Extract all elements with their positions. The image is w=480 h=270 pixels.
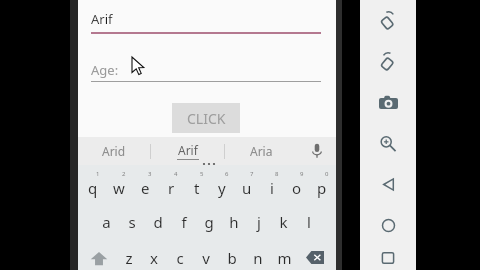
staticText: g — [204, 212, 214, 232]
staticText: 3 — [148, 170, 152, 178]
button[interactable]: CLICK — [172, 103, 240, 133]
staticText: CLICK — [187, 109, 226, 128]
button[interactable]: Shift — [81, 245, 116, 270]
staticText: 0 — [325, 170, 329, 178]
button[interactable]: 4 — [158, 170, 184, 200]
button[interactable]: h — [221, 208, 246, 236]
button[interactable]: 7 — [234, 170, 259, 200]
staticText: h — [229, 212, 239, 232]
staticText: o — [292, 178, 302, 198]
button[interactable]: j — [246, 208, 271, 236]
button[interactable]: 3 — [132, 170, 158, 200]
staticText: 8 — [275, 170, 279, 178]
staticText: i — [270, 178, 274, 198]
button[interactable]: 0 — [309, 170, 334, 200]
staticText: 9 — [300, 170, 304, 178]
staticText: Aria — [250, 143, 273, 159]
staticText: 1 — [96, 170, 100, 178]
staticText: t — [194, 178, 200, 198]
button[interactable]: g — [196, 208, 221, 236]
button[interactable]: 8 — [259, 170, 284, 200]
button[interactable]: Recents — [360, 246, 416, 270]
button[interactable]: s — [119, 208, 145, 236]
button[interactable]: n — [245, 245, 271, 270]
staticText: Age: — [91, 61, 119, 79]
staticText: s — [128, 212, 136, 232]
staticText: 2 — [122, 170, 126, 178]
staticText: 5 — [200, 170, 204, 178]
button[interactable]: a — [93, 208, 119, 236]
button[interactable]: Screenshot — [360, 82, 416, 123]
staticText: q — [88, 178, 98, 198]
button[interactable]: Voice input — [298, 137, 336, 165]
staticText: 6 — [225, 170, 229, 178]
staticText: j — [257, 212, 261, 232]
staticText: c — [176, 248, 184, 268]
button[interactable]: f — [171, 208, 196, 236]
button[interactable]: Zoom — [360, 123, 416, 164]
button[interactable]: b — [219, 245, 245, 270]
staticText: m — [277, 248, 292, 268]
button[interactable]: 2 — [106, 170, 132, 200]
staticText: p — [317, 178, 327, 198]
staticText: n — [253, 248, 263, 268]
button[interactable]: Back — [360, 164, 416, 205]
button[interactable]: 1 — [80, 170, 106, 200]
staticText: u — [242, 178, 252, 198]
button[interactable]: x — [141, 245, 167, 270]
button[interactable]: Aria — [225, 137, 298, 165]
staticText: z — [125, 248, 133, 268]
staticText: b — [227, 248, 237, 268]
button[interactable]: 6 — [209, 170, 234, 200]
button[interactable]: l — [296, 208, 321, 236]
staticText: r — [168, 178, 175, 198]
button[interactable]: m — [271, 245, 297, 270]
button[interactable]: 9 — [284, 170, 309, 200]
staticText: d — [153, 212, 163, 232]
button[interactable]: z — [116, 245, 141, 270]
staticText: x — [150, 248, 158, 268]
button[interactable]: Arid — [78, 137, 150, 165]
staticText: k — [279, 212, 288, 232]
button[interactable]: Rotate right — [360, 41, 416, 82]
button[interactable]: Backspace — [297, 245, 333, 270]
button[interactable]: d — [145, 208, 171, 236]
staticText: Arif — [178, 142, 198, 158]
staticText: v — [202, 248, 210, 268]
button[interactable]: k — [271, 208, 296, 236]
staticText: e — [141, 178, 150, 198]
staticText: f — [181, 212, 187, 232]
button[interactable]: 5 — [184, 170, 209, 200]
staticText: a — [102, 212, 111, 232]
staticText: 4 — [174, 170, 178, 178]
staticText: w — [113, 178, 125, 198]
button[interactable]: Arif — [151, 137, 224, 165]
staticText: 7 — [250, 170, 254, 178]
staticText: Arid — [102, 143, 126, 159]
button[interactable]: Home — [360, 205, 416, 246]
button[interactable]: v — [193, 245, 219, 270]
staticText: l — [307, 212, 311, 232]
staticText: Arif — [91, 10, 113, 28]
button[interactable]: c — [167, 245, 193, 270]
button[interactable]: Rotate left — [360, 0, 416, 41]
staticText: y — [218, 178, 226, 198]
